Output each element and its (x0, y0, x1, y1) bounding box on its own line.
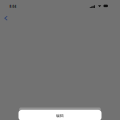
button[interactable]: Back (1, 13, 11, 24)
staticText: 8:04 (10, 5, 17, 9)
staticText: 编辑 (56, 113, 64, 118)
button[interactable]: 编辑 (18, 110, 101, 120)
